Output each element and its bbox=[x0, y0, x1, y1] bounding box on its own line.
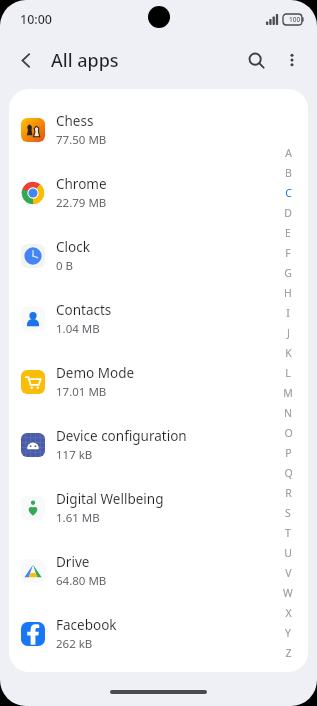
staticText: R bbox=[285, 486, 292, 500]
staticText: O bbox=[284, 426, 293, 440]
button[interactable]: J bbox=[280, 323, 296, 343]
button[interactable]: Facebook bbox=[9, 602, 308, 665]
staticText: Contacts bbox=[56, 301, 112, 319]
button[interactable]: D bbox=[280, 203, 296, 223]
button[interactable]: Chrome bbox=[9, 161, 308, 224]
staticText: 262 kB bbox=[56, 636, 93, 652]
staticText: G bbox=[284, 266, 292, 280]
button[interactable]: More options bbox=[274, 42, 310, 78]
staticText: Z bbox=[285, 646, 292, 660]
staticText: S bbox=[285, 506, 291, 520]
button[interactable]: S bbox=[280, 503, 296, 523]
staticText: 77.50 MB bbox=[56, 132, 107, 148]
staticText: 1.04 MB bbox=[56, 321, 100, 337]
button[interactable]: C bbox=[280, 183, 296, 203]
button[interactable]: T bbox=[280, 523, 296, 543]
staticText: Digital Wellbeing bbox=[56, 490, 164, 508]
staticText: Y bbox=[285, 626, 291, 640]
staticText: Chrome bbox=[56, 175, 107, 193]
staticText: J bbox=[287, 326, 290, 340]
button[interactable]: Contacts bbox=[9, 287, 308, 350]
staticText: X bbox=[285, 606, 292, 620]
staticText: All apps bbox=[51, 48, 119, 73]
button[interactable]: Demo Mode bbox=[9, 350, 308, 413]
button[interactable]: G bbox=[280, 263, 296, 283]
button[interactable]: E bbox=[280, 223, 296, 243]
staticText: Device configuration bbox=[56, 427, 187, 445]
staticText: 10:00 bbox=[20, 11, 53, 28]
staticText: P bbox=[285, 446, 292, 460]
staticText: C bbox=[285, 186, 292, 200]
staticText: Q bbox=[284, 466, 293, 480]
button[interactable]: Back bbox=[10, 44, 42, 76]
staticText: L bbox=[285, 366, 291, 380]
staticText: D bbox=[284, 206, 292, 220]
button[interactable]: O bbox=[280, 423, 296, 443]
staticText: U bbox=[284, 546, 292, 560]
staticText: 100 bbox=[289, 15, 301, 24]
button[interactable]: R bbox=[280, 483, 296, 503]
staticText: 117 kB bbox=[56, 447, 93, 463]
button[interactable]: Clock bbox=[9, 224, 308, 287]
staticText: Chess bbox=[56, 112, 94, 130]
button[interactable]: Search bbox=[238, 42, 274, 78]
staticText: 64.80 MB bbox=[56, 573, 107, 589]
staticText: 17.01 MB bbox=[56, 384, 107, 400]
staticText: M bbox=[283, 386, 293, 400]
staticText: N bbox=[284, 406, 292, 420]
staticText: 1.61 MB bbox=[56, 510, 100, 526]
button[interactable]: U bbox=[280, 543, 296, 563]
button[interactable]: Y bbox=[280, 623, 296, 643]
button[interactable]: K bbox=[280, 343, 296, 363]
staticText: Facebook bbox=[56, 616, 117, 634]
button[interactable]: F bbox=[280, 243, 296, 263]
staticText: Demo Mode bbox=[56, 364, 135, 382]
button[interactable]: V bbox=[280, 563, 296, 583]
staticText: Drive bbox=[56, 553, 90, 571]
staticText: A bbox=[285, 146, 292, 160]
button[interactable]: P bbox=[280, 443, 296, 463]
staticText: H bbox=[284, 286, 292, 300]
staticText: 22.79 MB bbox=[56, 195, 107, 211]
staticText: Clock bbox=[56, 238, 90, 256]
button[interactable]: Z bbox=[280, 643, 296, 663]
button[interactable]: I bbox=[280, 303, 296, 323]
button[interactable]: Drive bbox=[9, 539, 308, 602]
button[interactable]: B bbox=[280, 163, 296, 183]
staticText: I bbox=[286, 306, 290, 320]
button[interactable]: W bbox=[280, 583, 296, 603]
staticText: W bbox=[283, 586, 293, 600]
button[interactable]: X bbox=[280, 603, 296, 623]
button[interactable]: A bbox=[280, 143, 296, 163]
staticText: V bbox=[285, 566, 292, 580]
button[interactable]: N bbox=[280, 403, 296, 423]
button[interactable]: Q bbox=[280, 463, 296, 483]
staticText: K bbox=[285, 346, 292, 360]
button[interactable]: H bbox=[280, 283, 296, 303]
staticText: T bbox=[285, 526, 291, 540]
button[interactable]: L bbox=[280, 363, 296, 383]
button[interactable]: Chess bbox=[9, 98, 308, 161]
button[interactable]: Digital Wellbeing bbox=[9, 476, 308, 539]
button[interactable]: M bbox=[280, 383, 296, 403]
staticText: 0 B bbox=[56, 258, 74, 274]
staticText: E bbox=[285, 226, 291, 240]
staticText: F bbox=[285, 246, 291, 260]
button[interactable]: Device configuration bbox=[9, 413, 308, 476]
staticText: B bbox=[285, 166, 292, 180]
